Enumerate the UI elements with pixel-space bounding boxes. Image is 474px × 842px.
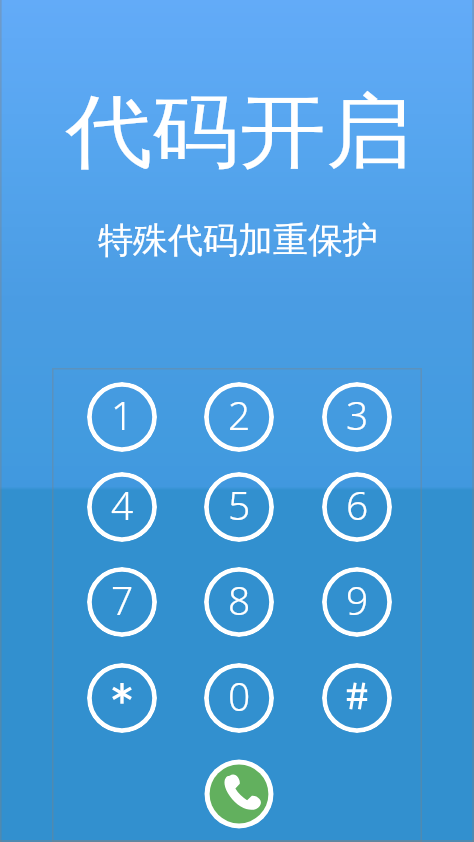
button[interactable]: 3 [322,382,392,452]
staticText: 代码开启 [65,82,413,183]
button[interactable]: 6 [322,472,392,542]
staticText: 0 [228,669,251,722]
staticText: 5 [228,478,251,531]
button[interactable]: 8 [204,567,274,637]
button[interactable]: 4 [87,472,157,542]
staticText: 7 [111,573,134,626]
button[interactable]: 1 [87,382,157,452]
staticText: 2 [228,388,251,441]
staticText: 4 [111,478,134,531]
staticText: 3 [346,388,369,441]
staticText: 特殊代码加重保护 [98,218,378,262]
button[interactable]: 2 [204,382,274,452]
staticText: 6 [346,478,369,531]
button[interactable]: 5 [204,472,274,542]
button[interactable]: 0 [204,663,274,733]
button[interactable]: Pound [322,663,392,733]
button[interactable]: Call [204,759,274,829]
button[interactable]: 9 [322,567,392,637]
button[interactable]: 7 [87,567,157,637]
staticText: 8 [228,573,251,626]
staticText: 1 [111,388,134,441]
button[interactable]: Star [87,663,157,733]
staticText: 9 [346,573,369,626]
